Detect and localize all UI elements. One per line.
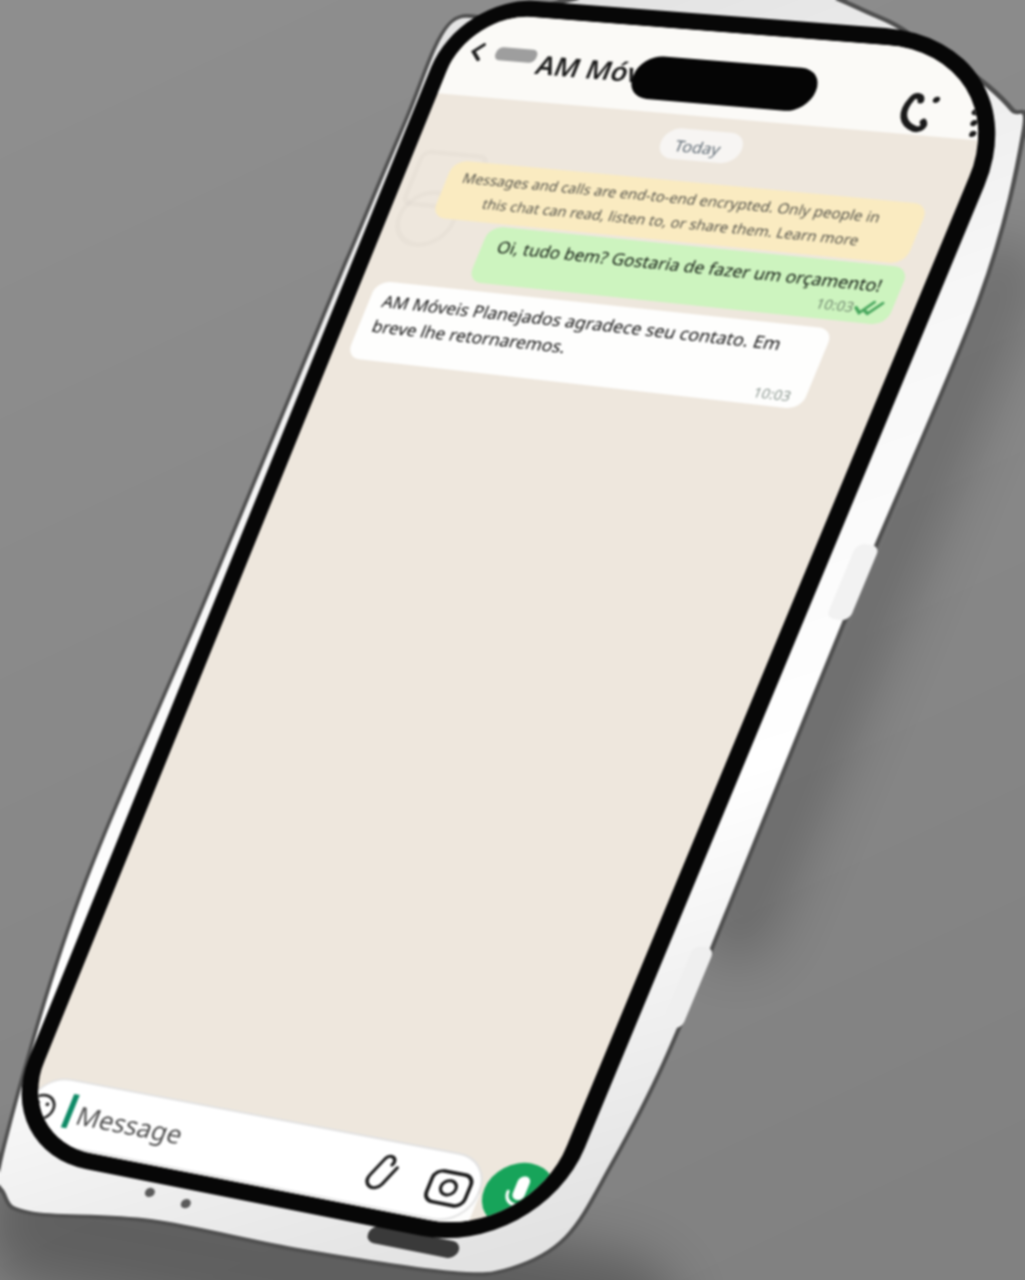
button[interactable]: [25, 1085, 465, 1255]
button[interactable]: [350, 1155, 420, 1235]
button[interactable]: [935, 95, 1015, 165]
button[interactable]: [418, 1160, 483, 1240]
button[interactable]: [470, 25, 630, 115]
button[interactable]: [478, 1145, 573, 1245]
button[interactable]: [875, 75, 965, 155]
